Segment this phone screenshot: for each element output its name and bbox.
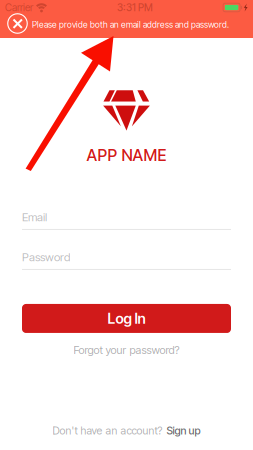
button[interactable]: Log In [22, 304, 231, 333]
staticText: Please provide both an email address and… [32, 19, 229, 30]
staticText: Sign up [166, 424, 200, 437]
button[interactable]: Forgot your password? [22, 343, 231, 357]
staticText: Carrier [5, 1, 33, 14]
staticText: Log In [107, 310, 145, 327]
staticText: Forgot your password? [73, 343, 179, 356]
staticText: 3:31 PM [117, 1, 153, 14]
staticText: APP NAME [86, 146, 166, 165]
staticText: Password [22, 250, 70, 264]
staticText: Don't have an account? [52, 424, 162, 437]
staticText: Email [22, 210, 47, 224]
button[interactable]: Sign up [166, 424, 200, 437]
